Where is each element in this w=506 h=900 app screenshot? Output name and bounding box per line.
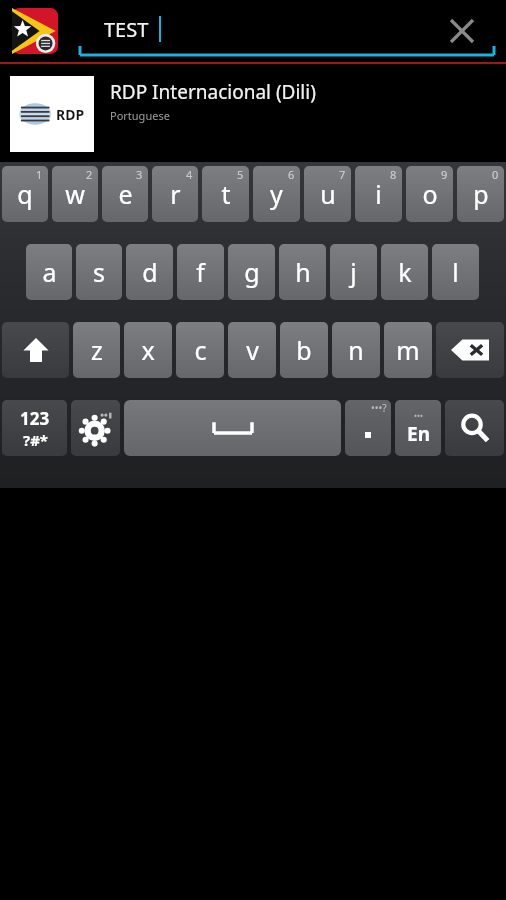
button[interactable]: j [330,244,377,300]
staticText: 3 [136,167,143,182]
button[interactable]: g [228,244,275,300]
staticText: v [246,333,259,367]
button[interactable]: p [457,166,504,222]
button[interactable]: App icon [12,8,58,54]
button[interactable]: d [126,244,173,300]
staticText: h [295,255,311,289]
button[interactable]: q [2,166,48,222]
staticText: 1 [36,167,43,182]
staticText: 2 [86,167,93,182]
staticText: ?#* [23,430,48,450]
button[interactable]: Space [124,400,341,456]
staticText: RDP Internacional (Dili) [110,79,316,105]
button[interactable]: u [304,166,351,222]
staticText: z [91,333,103,367]
button[interactable]: f [177,244,224,300]
button[interactable]: x [124,322,172,378]
staticText: 5 [237,167,244,182]
button[interactable]: TEST [78,5,496,57]
staticText: f [196,255,205,289]
staticText: 4 [186,167,193,182]
staticText: 0 [492,167,499,182]
staticText: x [141,333,155,367]
button[interactable]: Symbols [2,400,67,456]
staticText: TEST [104,16,149,43]
button[interactable]: RDP [0,64,506,156]
staticText: s [93,255,105,289]
staticText: RDP [56,105,85,124]
staticText: o [422,177,438,211]
staticText: y [270,177,283,211]
button[interactable]: i [355,166,402,222]
staticText: r [170,177,181,211]
staticText: ••• [414,410,424,421]
staticText: u [320,177,336,211]
button[interactable]: r [152,166,198,222]
staticText: 9 [441,167,448,182]
staticText: i [375,177,382,211]
button[interactable]: n [332,322,380,378]
staticText: n [348,333,364,367]
button[interactable]: s [76,244,122,300]
button[interactable]: Backspace [436,322,504,378]
staticText: l [452,255,459,289]
staticText: w [65,177,85,211]
staticText: d [142,255,158,289]
staticText: m [396,333,420,367]
button[interactable]: h [279,244,326,300]
button[interactable]: c [176,322,224,378]
staticText: 123 [20,407,50,430]
staticText: q [17,177,33,211]
staticText: p [473,177,489,211]
staticText: a [42,255,57,289]
button[interactable]: Clear search [442,11,482,51]
staticText: g [244,255,260,289]
staticText: En [407,421,430,447]
staticText: t [221,177,231,211]
button[interactable]: Period [345,400,391,456]
staticText: Portuguese [110,108,170,123]
button[interactable]: k [381,244,428,300]
button[interactable]: w [52,166,98,222]
button[interactable]: y [253,166,300,222]
staticText: 6 [288,167,295,182]
button[interactable]: e [102,166,148,222]
button[interactable]: b [280,322,328,378]
button[interactable]: o [406,166,453,222]
staticText: b [296,333,312,367]
staticText: 8 [390,167,397,182]
button[interactable]: Search [445,400,504,456]
staticText: 7 [339,167,346,182]
button[interactable]: Settings [71,400,120,456]
button[interactable]: Shift [2,322,69,378]
button[interactable]: t [202,166,249,222]
button[interactable]: Language [395,400,441,456]
button[interactable]: l [432,244,479,300]
button[interactable]: a [26,244,72,300]
staticText: j [350,255,357,289]
button[interactable]: m [384,322,432,378]
button[interactable]: v [228,322,276,378]
staticText: e [118,177,133,211]
staticText: k [398,255,412,289]
staticText: •••? [371,401,387,415]
button[interactable]: z [73,322,120,378]
staticText: c [194,333,207,367]
